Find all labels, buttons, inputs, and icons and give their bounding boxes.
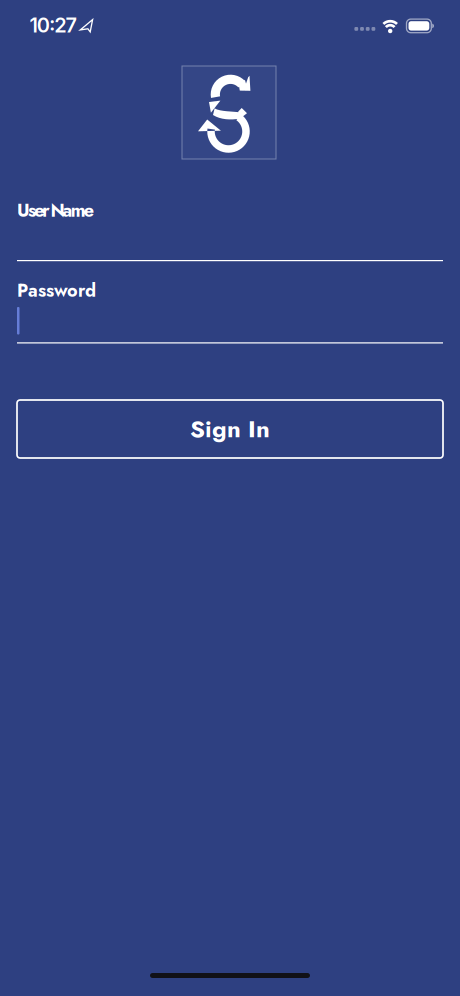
staticText: Sign In xyxy=(190,412,270,446)
button[interactable]: Password xyxy=(17,303,443,341)
staticText: Password xyxy=(17,277,96,303)
button[interactable]: Sign In xyxy=(17,400,443,458)
staticText: User Name xyxy=(17,197,94,223)
staticText: 10:27 xyxy=(30,13,76,37)
